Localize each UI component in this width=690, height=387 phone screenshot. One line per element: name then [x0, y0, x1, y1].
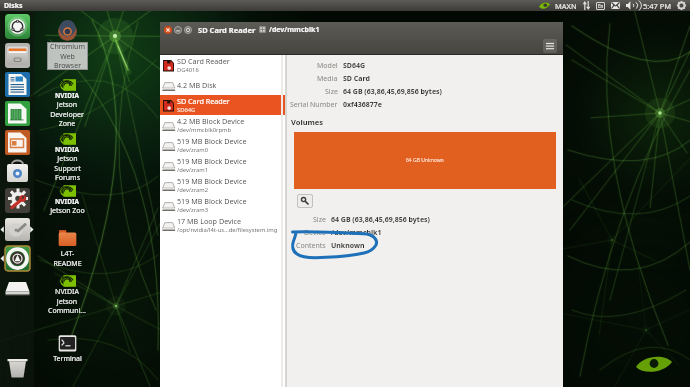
- staticText: Size: [313, 215, 326, 225]
- button[interactable]: LibreOffice Calc: [0, 99, 34, 128]
- staticText: /dev/mmcblk1: [331, 228, 382, 238]
- button[interactable]: Dash home: [0, 12, 34, 41]
- button[interactable]: Software Updater: [0, 244, 34, 273]
- staticText: 17 MB Loop Device: [177, 216, 242, 226]
- button[interactable]: NVIDIA power mode: [538, 1, 551, 10]
- button[interactable]: 5:47 PM: [643, 1, 672, 11]
- button[interactable]: Chromium Web Browser: [31, 22, 103, 70]
- other: Disks: [5, 217, 30, 242]
- button[interactable]: Trash: [0, 353, 34, 382]
- other: LibreOffice Writer: [5, 72, 30, 97]
- staticText: Media: [317, 74, 338, 84]
- staticText: Jetson Developer Zone: [50, 100, 84, 128]
- staticText: 64 GB (63,86,45,69,856 bytes): [331, 215, 430, 225]
- other: Ubuntu Software: [5, 159, 30, 184]
- button[interactable]: Menu: [543, 39, 557, 53]
- button[interactable]: Close: [164, 26, 172, 34]
- staticText: 519 MB Block Device: [177, 156, 247, 166]
- staticText: /dev/zram1: [177, 166, 208, 174]
- staticText: NVIDIA Jetson Communi...: [48, 287, 86, 315]
- button[interactable]: System Settings: [0, 186, 34, 215]
- staticText: Chromium Web Browser: [50, 42, 85, 70]
- staticText: SD Card: [343, 74, 370, 84]
- staticText: NVIDIA: [55, 145, 79, 154]
- staticText: /dev/zram3: [177, 206, 208, 214]
- staticText: Volumes: [291, 117, 324, 127]
- staticText: Size: [325, 87, 338, 97]
- staticText: SD Card Reader: [198, 25, 256, 34]
- button[interactable]: More actions: [297, 194, 313, 208]
- button[interactable]: Disks: [4, 1, 23, 11]
- button[interactable]: Terminal: [31, 334, 103, 364]
- button[interactable]: NVIDIA Jetson Communi...: [31, 275, 103, 315]
- button[interactable]: Maximize: [184, 26, 192, 34]
- button[interactable]: SD Card Reader: [160, 55, 285, 75]
- staticText: Serial Number: [290, 100, 338, 110]
- other: Disk drive: [5, 275, 30, 300]
- button[interactable]: 519 MB Block Device: [160, 155, 285, 175]
- button[interactable]: Messaging: [611, 2, 620, 9]
- staticText: SD64G: [343, 61, 366, 71]
- staticText: 0xf436877e: [343, 100, 382, 110]
- staticText: SD Card Reader: [177, 96, 230, 106]
- staticText: 64 GB Unknown: [406, 157, 444, 164]
- button[interactable]: MAXN: [555, 1, 577, 11]
- staticText: SD64G: [177, 106, 196, 114]
- staticText: 5:47 PM: [643, 1, 672, 11]
- button[interactable]: 519 MB Block Device: [160, 175, 285, 195]
- staticText: 519 MB Block Device: [177, 196, 247, 206]
- button[interactable]: LibreOffice Impress: [0, 128, 34, 157]
- staticText: En: [598, 3, 604, 9]
- button[interactable]: En: [596, 2, 605, 10]
- button[interactable]: 4.2 MB Block Device: [160, 115, 285, 135]
- button[interactable]: Disks: [0, 215, 34, 244]
- button[interactable]: NVIDIA: [31, 133, 103, 182]
- staticText: /dev/zram0: [177, 146, 208, 154]
- staticText: 4.2 MB Disk: [177, 80, 217, 90]
- staticText: Contents: [296, 241, 326, 251]
- staticText: Jetson Support Forums: [54, 154, 81, 182]
- button[interactable]: L4T- README: [31, 229, 103, 268]
- button[interactable]: Volume: [626, 1, 637, 10]
- staticText: /dev/zram2: [177, 186, 208, 194]
- button[interactable]: Network: [583, 1, 590, 10]
- staticText: NVIDIA: [55, 91, 79, 100]
- button[interactable]: Minimize: [174, 26, 182, 34]
- other: Files: [5, 43, 30, 68]
- button[interactable]: System settings: [677, 1, 686, 10]
- staticText: /dev/mmcblk0rpmb: [177, 126, 232, 134]
- staticText: Jetson Zoo: [50, 206, 85, 216]
- staticText: Terminal: [53, 354, 82, 364]
- staticText: /dev/mmcblk1: [269, 25, 320, 34]
- button[interactable]: Files: [0, 41, 34, 70]
- button[interactable]: LibreOffice Writer: [0, 70, 34, 99]
- other: Dash home: [5, 14, 30, 39]
- staticText: Unknown: [331, 241, 365, 251]
- other: System Settings: [5, 188, 30, 213]
- button[interactable]: NVIDIA: [31, 185, 103, 216]
- other: Trash: [5, 355, 30, 380]
- button[interactable]: SD Card Reader: [160, 95, 285, 115]
- staticText: NVIDIA: [55, 197, 79, 206]
- other: Software Updater: [5, 246, 30, 271]
- button[interactable]: 519 MB Block Device: [160, 195, 285, 215]
- other: LibreOffice Calc: [5, 101, 30, 126]
- staticText: SD Card Reader: [177, 56, 230, 66]
- staticText: Disks: [4, 1, 23, 11]
- button[interactable]: 64 GB Unknown: [294, 132, 556, 189]
- button[interactable]: NVIDIA: [31, 79, 103, 128]
- staticText: Model: [317, 61, 338, 71]
- staticText: 519 MB Block Device: [177, 176, 247, 186]
- staticText: 4.2 MB Block Device: [177, 116, 245, 126]
- button[interactable]: 17 MB Loop Device: [160, 215, 285, 235]
- staticText: /opt/nvidia/l4t-us...de/filesystem.img: [177, 226, 278, 234]
- staticText: Device: [304, 228, 326, 238]
- button[interactable]: 519 MB Block Device: [160, 135, 285, 155]
- staticText: DG4016: [177, 66, 199, 74]
- other: LibreOffice Impress: [5, 130, 30, 155]
- button[interactable]: Ubuntu Software: [0, 157, 34, 186]
- staticText: MAXN: [555, 1, 577, 11]
- button[interactable]: 4.2 MB Disk: [160, 75, 285, 95]
- button[interactable]: Disk drive: [0, 273, 34, 302]
- staticText: L4T- README: [53, 249, 82, 268]
